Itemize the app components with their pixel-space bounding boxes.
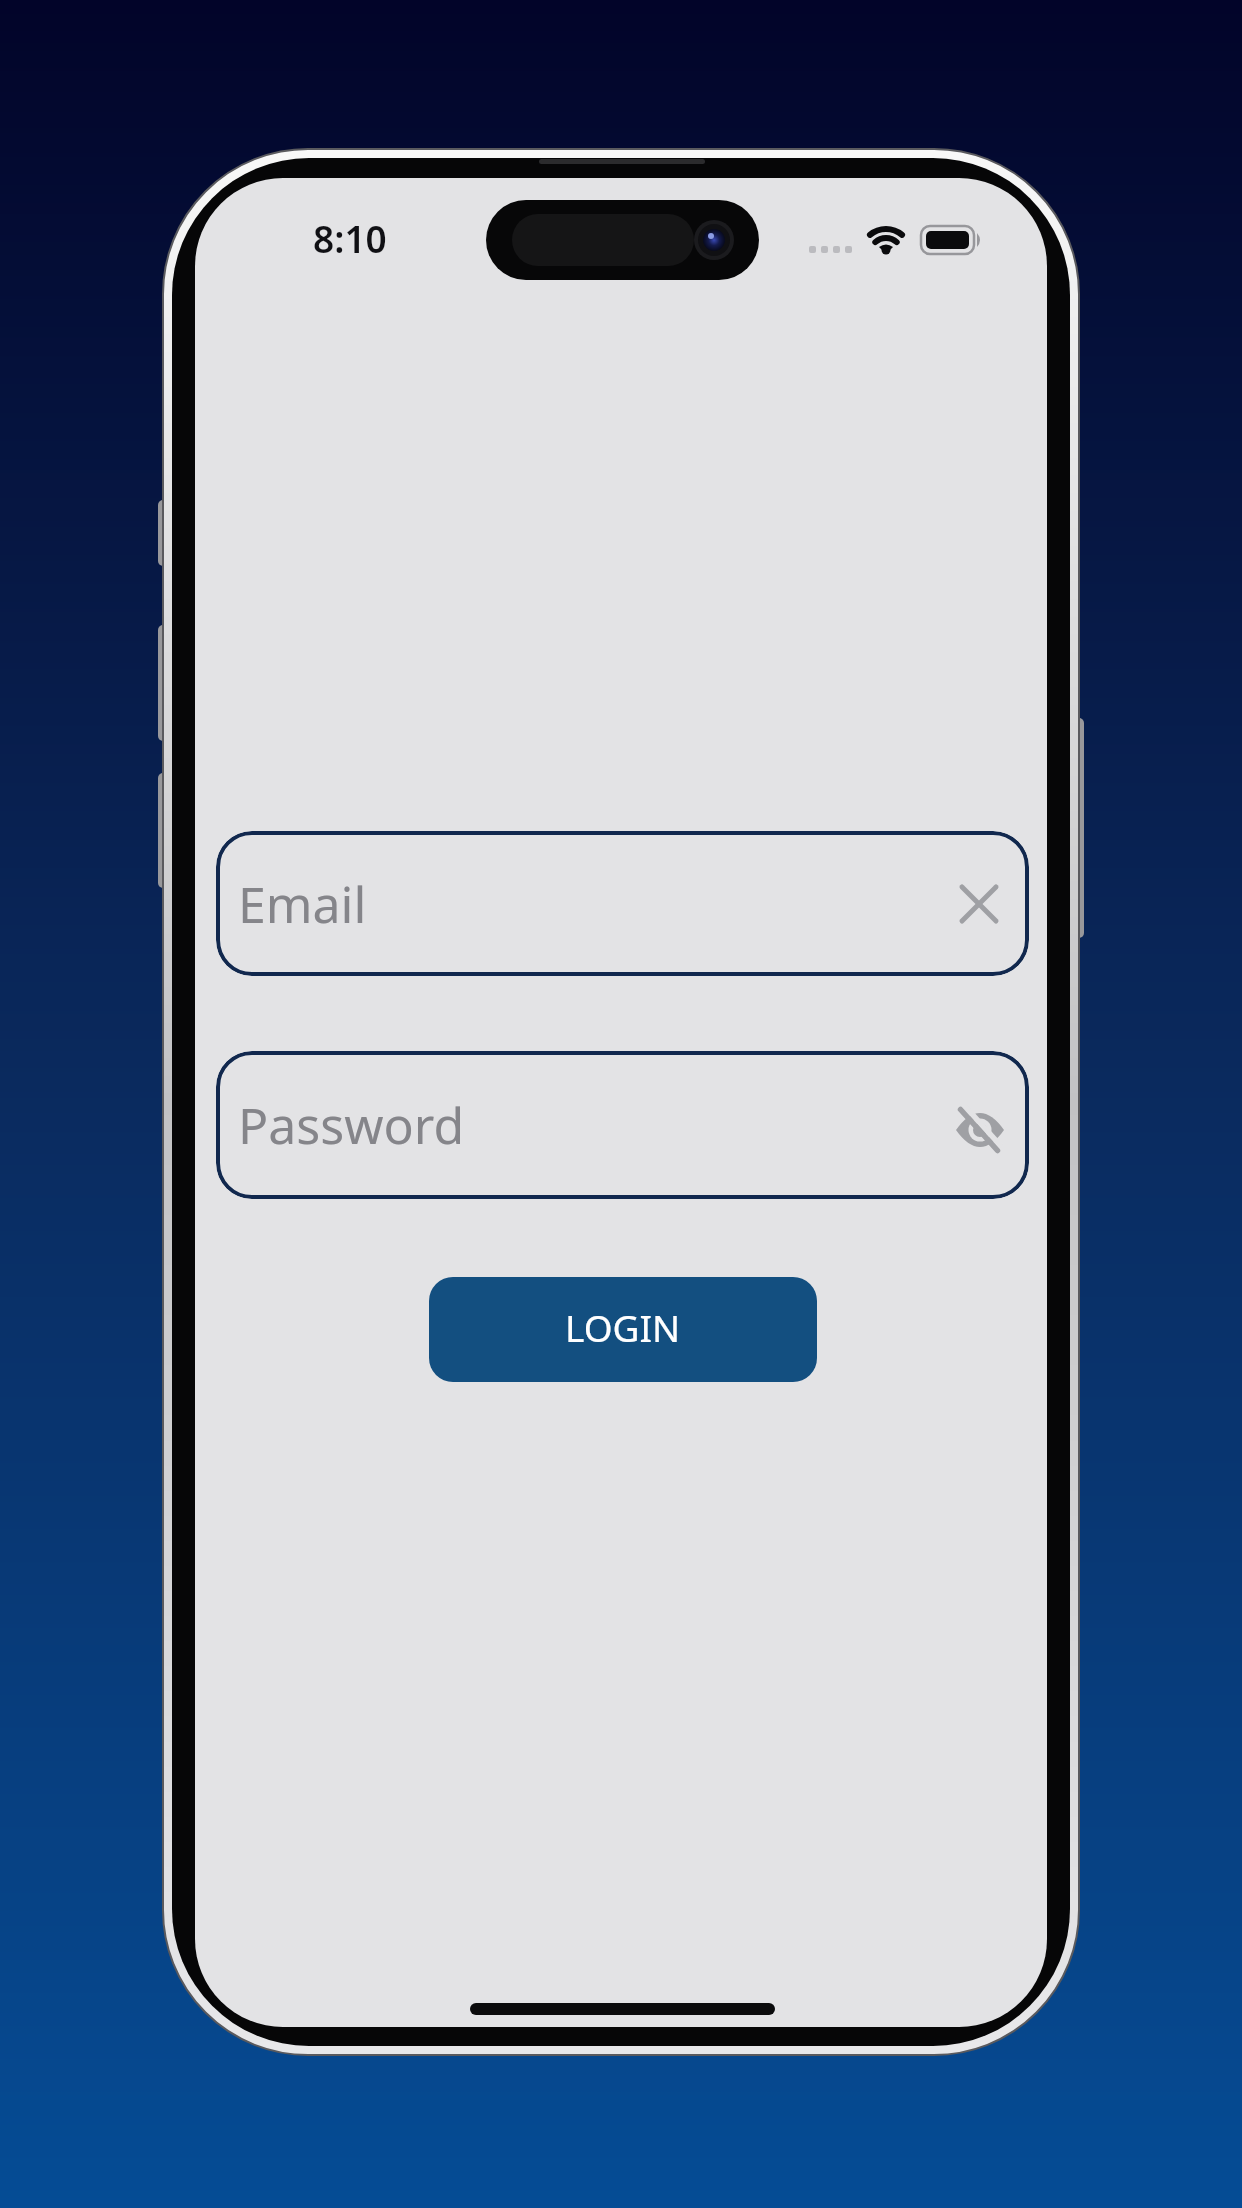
button[interactable]: Email (216, 831, 1029, 976)
staticText: Email (238, 870, 367, 938)
staticText: LOGIN (565, 1302, 681, 1352)
button[interactable]: Password (216, 1051, 1029, 1199)
staticText: Password (238, 1091, 465, 1159)
staticText: 8:10 (313, 213, 387, 263)
button[interactable]: LOGIN (429, 1277, 817, 1382)
